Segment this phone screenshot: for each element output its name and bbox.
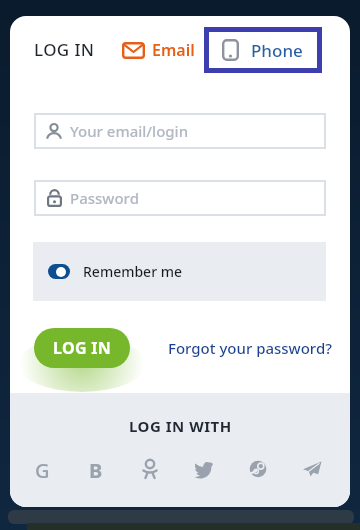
button[interactable]: Email xyxy=(122,30,195,70)
button[interactable]: Phone xyxy=(204,27,322,73)
staticText: G xyxy=(35,457,50,481)
button[interactable] xyxy=(192,457,216,481)
button[interactable] xyxy=(246,457,270,481)
button[interactable]: B xyxy=(84,457,108,481)
staticText: LOG IN xyxy=(53,337,112,359)
button[interactable]: G xyxy=(30,457,54,481)
staticText: B xyxy=(89,457,103,481)
button[interactable]: Remember me xyxy=(48,242,326,301)
staticText: Remember me xyxy=(83,262,183,281)
staticText: Email xyxy=(152,39,195,61)
staticText: Your email/login xyxy=(70,121,189,141)
staticText: LOG IN xyxy=(34,38,95,61)
button[interactable] xyxy=(300,457,324,481)
staticText: LOG IN WITH xyxy=(129,416,232,436)
staticText: Forgot your password? xyxy=(168,338,332,358)
button[interactable]: Password xyxy=(34,180,326,216)
button[interactable]: Forgot your password? xyxy=(130,328,332,368)
button[interactable]: Your email/login xyxy=(34,113,326,149)
button[interactable] xyxy=(138,457,162,481)
staticText: Password xyxy=(70,188,139,208)
staticText: Phone xyxy=(251,39,303,62)
button[interactable]: LOG IN xyxy=(34,328,130,368)
